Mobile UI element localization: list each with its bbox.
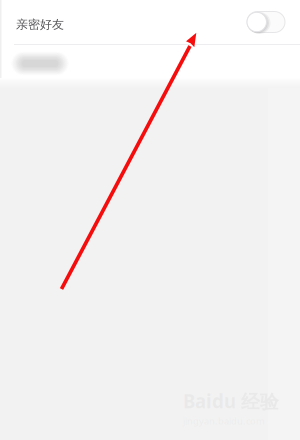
staticText: Baidu 经验 xyxy=(183,389,279,414)
button[interactable] xyxy=(0,45,300,78)
staticText: 亲密好友 xyxy=(16,17,64,32)
button[interactable]: 亲密好友 xyxy=(0,0,300,44)
